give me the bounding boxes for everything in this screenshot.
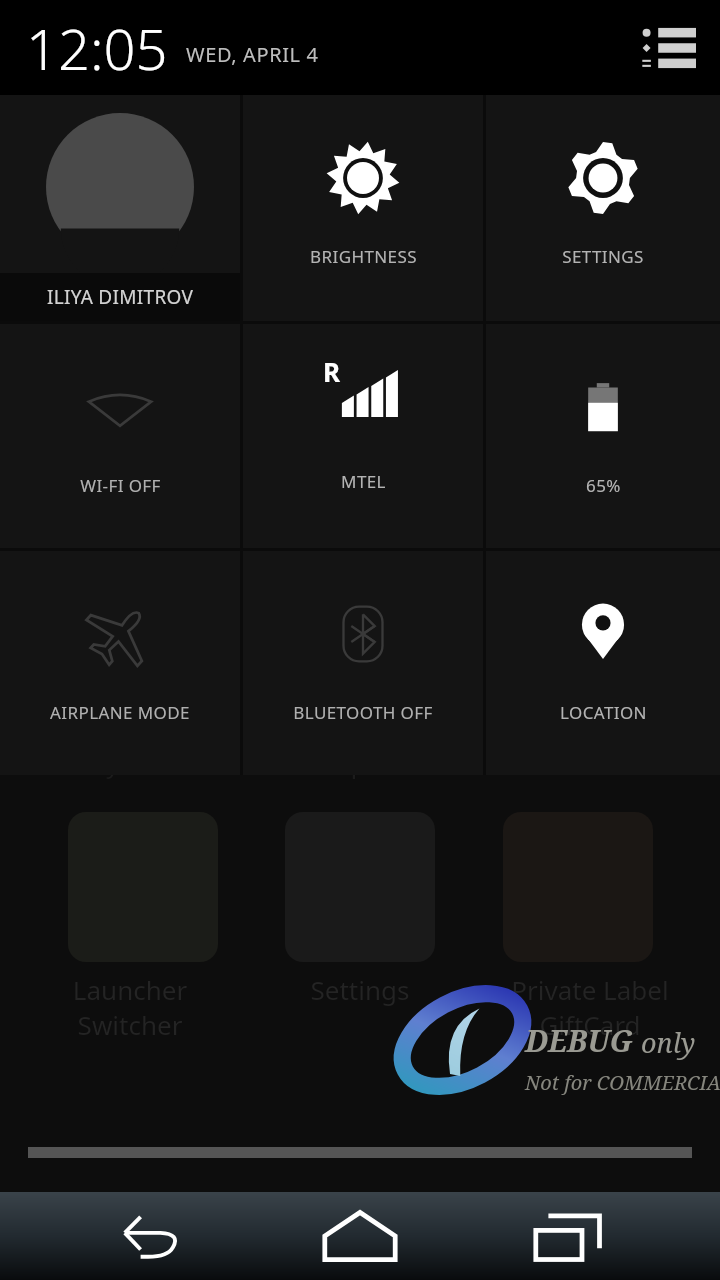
button[interactable]: Home bbox=[305, 1192, 415, 1280]
staticText: R bbox=[323, 354, 341, 389]
button[interactable]: Notifications bbox=[638, 17, 700, 79]
button[interactable]: Settings bbox=[486, 95, 720, 321]
button[interactable]: Location bbox=[486, 551, 720, 775]
button[interactable]: Brightness bbox=[243, 95, 483, 321]
staticText: DEBUG bbox=[525, 1020, 634, 1061]
button[interactable]: User Iliya Dimitrov bbox=[0, 95, 240, 321]
button[interactable]: Battery 65 percent bbox=[486, 324, 720, 548]
staticText: Private Label GiftCard bbox=[490, 972, 690, 1042]
button[interactable]: Back bbox=[98, 1192, 208, 1280]
button[interactable]: Airplane mode bbox=[0, 551, 240, 775]
staticText: 65% bbox=[586, 474, 621, 497]
button[interactable]: Wi-Fi off bbox=[0, 324, 240, 548]
staticText: BLUETOOTH OFF bbox=[293, 701, 433, 724]
staticText: Not for COMMERCIAL bbox=[525, 1069, 720, 1096]
staticText: ILIYA DIMITROV bbox=[47, 284, 194, 310]
button[interactable]: Mobile network MTEL bbox=[243, 324, 483, 548]
staticText: Launcher Switcher bbox=[30, 972, 230, 1042]
staticText: BRIGHTNESS bbox=[310, 245, 417, 268]
staticText: LOCATION bbox=[560, 701, 647, 724]
staticText: 12:05 bbox=[26, 10, 168, 86]
staticText: SETTINGS bbox=[562, 245, 644, 268]
staticText: MTEL bbox=[341, 470, 386, 493]
button[interactable]: Recent apps bbox=[513, 1192, 623, 1280]
staticText: AIRPLANE MODE bbox=[50, 701, 190, 724]
staticText: WED, APRIL 4 bbox=[186, 41, 319, 68]
staticText: Settings bbox=[260, 972, 460, 1007]
button[interactable]: Bluetooth off bbox=[243, 551, 483, 775]
staticText: only bbox=[641, 1024, 696, 1061]
staticText: WI-FI OFF bbox=[80, 474, 161, 497]
